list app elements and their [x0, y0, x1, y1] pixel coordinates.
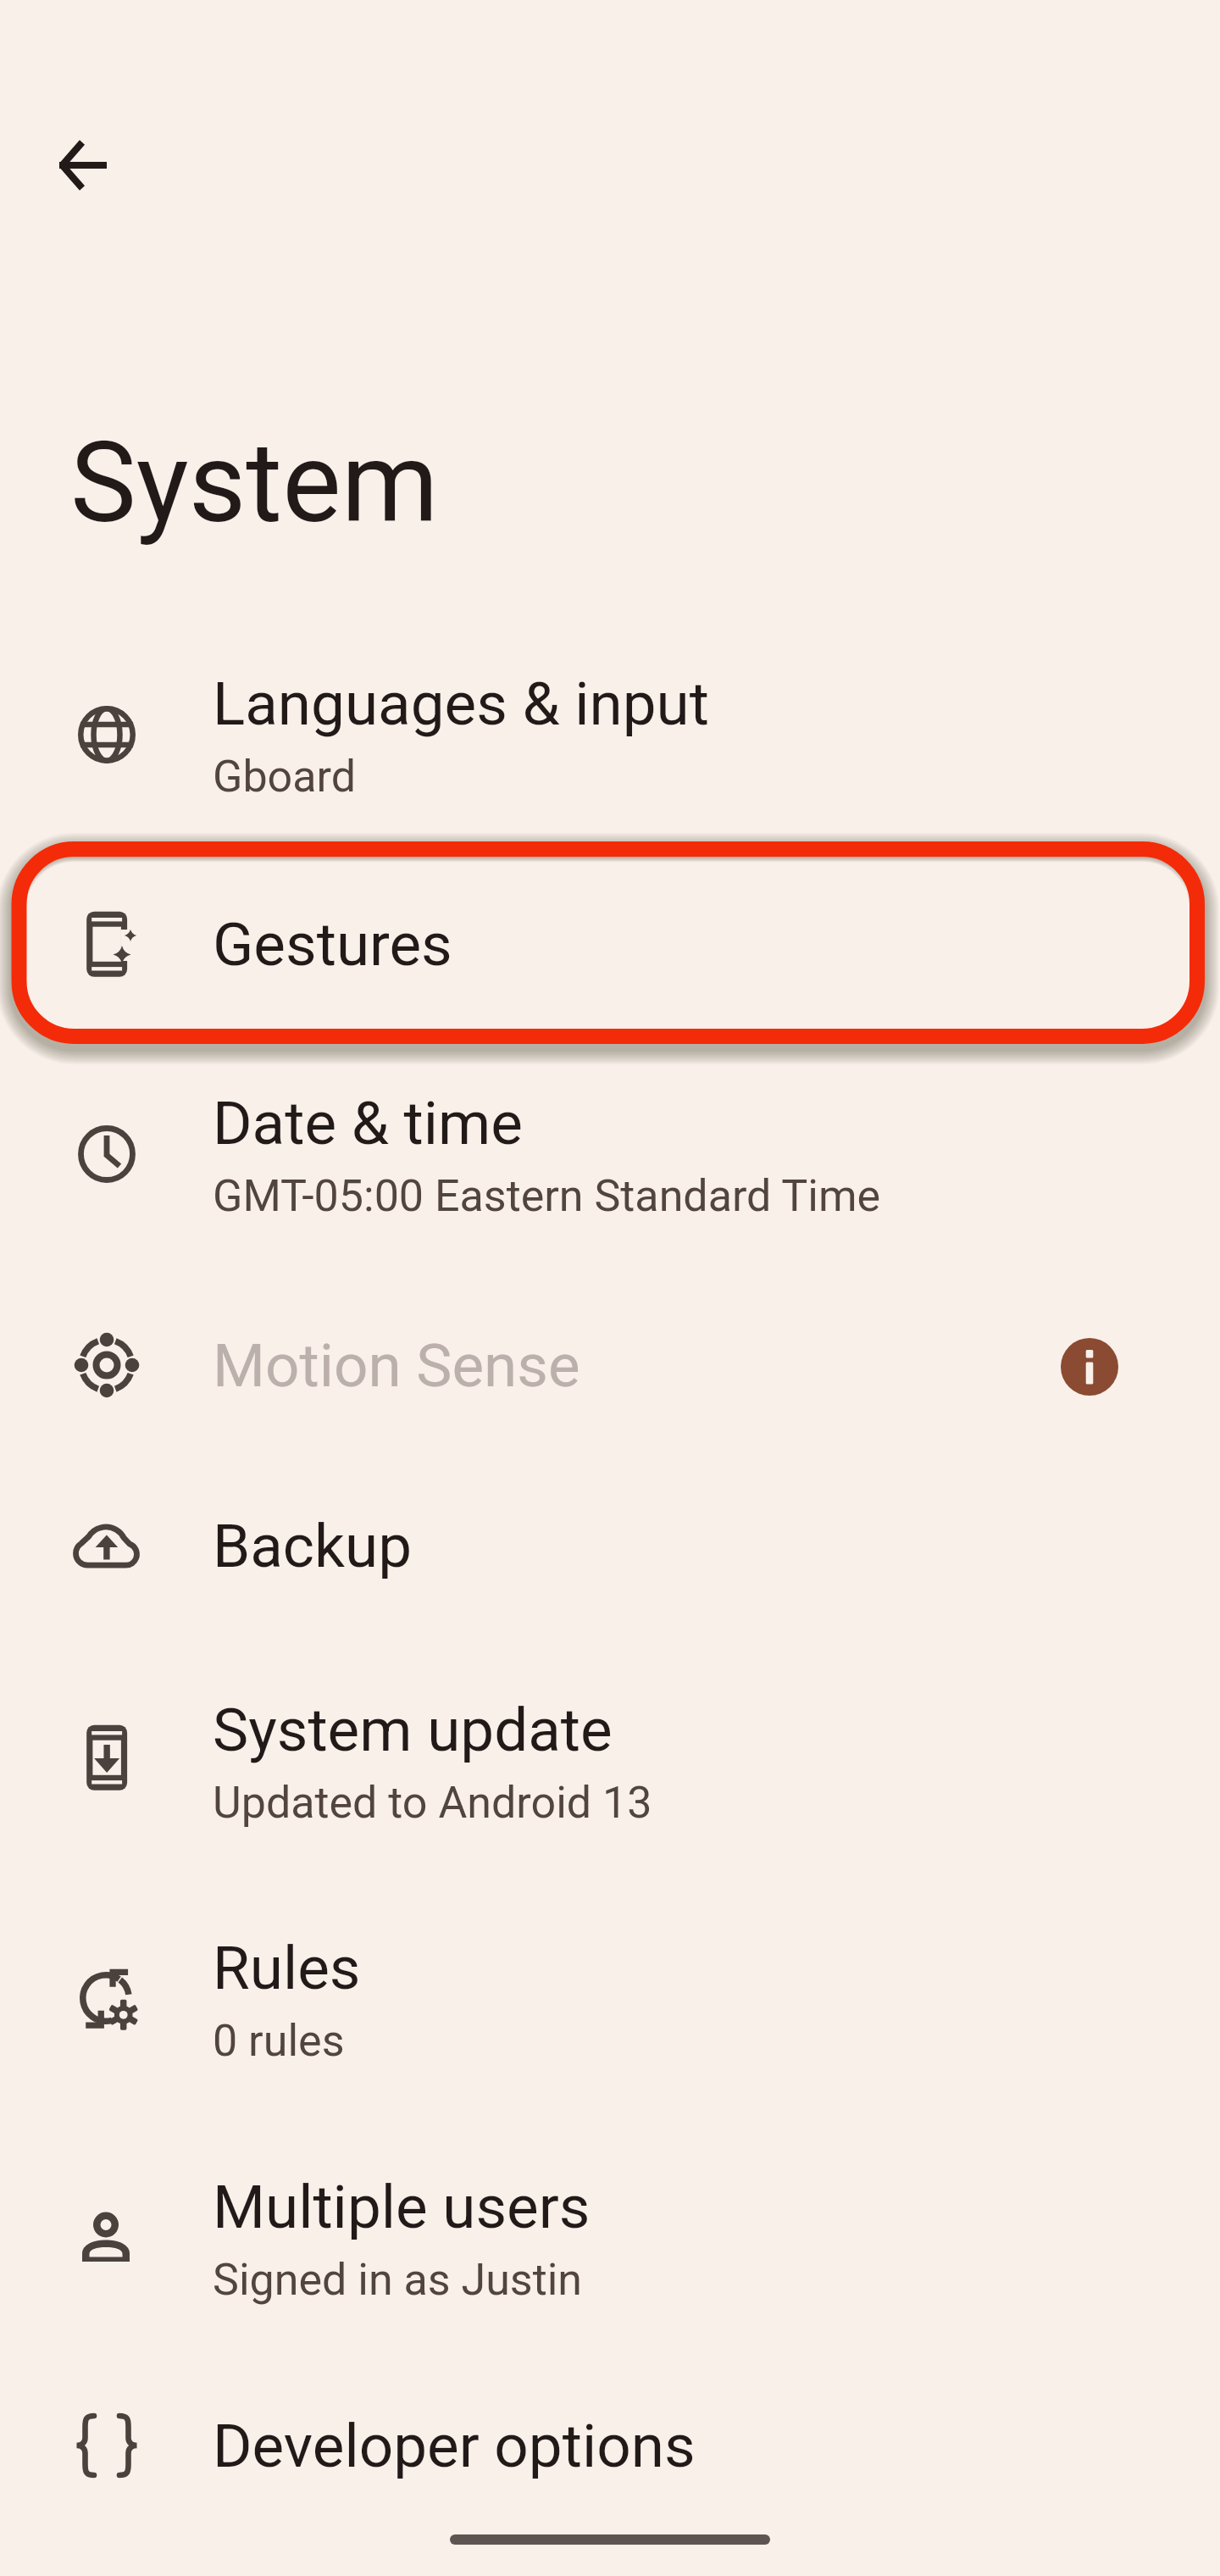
staticText: Date & time: [213, 1088, 523, 1158]
staticText: Multiple users: [213, 2172, 591, 2242]
staticText: Gboard: [213, 751, 357, 802]
button[interactable]: About Motion Sense: [1049, 1326, 1130, 1407]
staticText: GMT-05:00 Eastern Standard Time: [213, 1170, 881, 1222]
button[interactable]: Navigate up: [22, 104, 144, 226]
staticText: Backup: [213, 1511, 413, 1581]
staticText: Rules: [213, 1933, 361, 2003]
staticText: Languages & input: [213, 669, 709, 739]
staticText: System: [70, 418, 439, 548]
button[interactable]: Motion Sense: [0, 1264, 1220, 1466]
staticText: Developer options: [213, 2411, 696, 2481]
button[interactable]: Backup: [0, 1445, 1220, 1646]
button[interactable]: System update: [0, 1662, 1220, 1863]
staticText: Gestures: [213, 909, 452, 980]
staticText: Motion Sense: [213, 1330, 580, 1401]
button[interactable]: Multiple users: [0, 2139, 1220, 2340]
staticText: System update: [213, 1695, 613, 1765]
staticText: 0 rules: [213, 2015, 345, 2067]
button[interactable]: Rules: [0, 1900, 1220, 2101]
button[interactable]: Date & time: [0, 1055, 1220, 1257]
button[interactable]: Gestures: [0, 843, 1220, 1045]
button[interactable]: Developer options: [0, 2345, 1220, 2546]
staticText: Updated to Android 13: [213, 1777, 652, 1829]
button[interactable]: Languages & input: [0, 636, 1220, 837]
staticText: Signed in as Justin: [213, 2254, 583, 2306]
